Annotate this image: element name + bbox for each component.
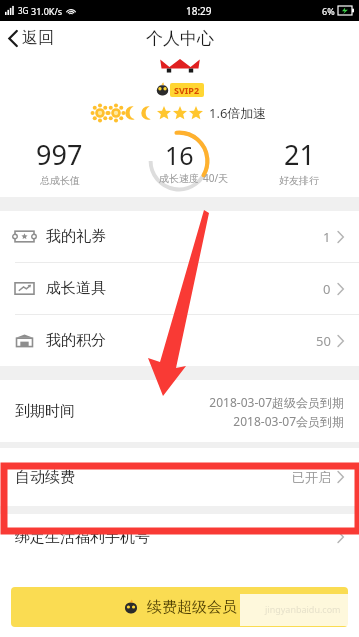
staticText: 已开启 bbox=[292, 469, 331, 485]
button[interactable]: 自动续费 bbox=[0, 448, 359, 506]
staticText: 1.6倍加速 bbox=[209, 104, 267, 122]
button[interactable]: 我的礼券 bbox=[0, 211, 359, 262]
button[interactable]: 我的积分 bbox=[0, 315, 359, 366]
staticText: 成长道具 bbox=[46, 279, 106, 298]
staticText: 自动续费 bbox=[15, 468, 75, 487]
staticText: 2018-03-07会员到期 bbox=[233, 413, 344, 429]
staticText: 0 bbox=[323, 280, 331, 298]
staticText: 到期时间 bbox=[15, 402, 75, 421]
staticText: 6% bbox=[322, 5, 335, 17]
staticText: 31.0K/s bbox=[31, 5, 63, 17]
button[interactable]: 续费超级会员 bbox=[11, 587, 348, 627]
button[interactable]: 绑定生活福利手机号 bbox=[0, 514, 359, 560]
staticText: 997 bbox=[36, 136, 83, 173]
staticText: 3G bbox=[18, 5, 29, 16]
staticText: 我的礼券 bbox=[46, 227, 106, 246]
staticText: 21 bbox=[284, 136, 315, 173]
staticText: 我的积分 bbox=[46, 331, 106, 350]
staticText: 16 bbox=[165, 138, 194, 172]
staticText: SVIP2 bbox=[174, 84, 200, 96]
button[interactable]: 返回 bbox=[0, 24, 64, 52]
button[interactable]: 成长道具 bbox=[0, 263, 359, 314]
staticText: 续费超级会员 bbox=[147, 598, 237, 617]
staticText: 50 bbox=[316, 332, 331, 350]
staticText: 40/天 bbox=[203, 171, 229, 185]
staticText: 18:29 bbox=[186, 4, 212, 18]
staticText: 1 bbox=[323, 228, 331, 246]
staticText: 个人中心 bbox=[146, 28, 214, 49]
staticText: 好友排行 bbox=[279, 174, 319, 187]
staticText: 总成长值 bbox=[40, 174, 80, 187]
staticText: 绑定生活福利手机号 bbox=[15, 528, 150, 547]
staticText: 返回 bbox=[22, 28, 54, 48]
staticText: 2018-03-07超级会员到期 bbox=[209, 394, 344, 410]
staticText: 成长速度 bbox=[159, 172, 199, 185]
staticText: jingyanbaidu.com bbox=[265, 603, 341, 615]
